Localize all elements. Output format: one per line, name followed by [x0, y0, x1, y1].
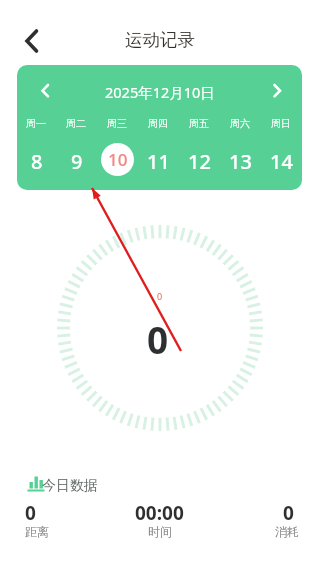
staticText: 12 [188, 148, 211, 175]
staticText: 周四 [148, 117, 168, 130]
staticText: 今日数据 [42, 477, 98, 495]
staticText: 0 [25, 500, 36, 526]
staticText: 14 [270, 148, 293, 175]
staticText: 运动记录 [125, 29, 195, 51]
staticText: 0 [157, 290, 163, 302]
staticText: 周六 [230, 117, 250, 130]
staticText: 周日 [271, 117, 291, 130]
staticText: 8 [31, 148, 43, 175]
staticText: 消耗 [275, 524, 299, 539]
staticText: 0 [147, 314, 169, 364]
staticText: 周三 [107, 117, 127, 130]
staticText: 2025年12月10日 [105, 82, 215, 102]
staticText: 9 [71, 148, 83, 175]
staticText: 0 [283, 500, 294, 526]
staticText: 13 [229, 148, 252, 175]
staticText: 距离 [25, 524, 49, 539]
staticText: 11 [147, 148, 170, 175]
staticText: 00:00 [135, 500, 184, 526]
staticText: 周二 [66, 117, 86, 130]
staticText: 时间 [148, 524, 172, 539]
staticText: 周一 [26, 117, 46, 130]
staticText: 10 [108, 148, 128, 171]
staticText: 周五 [189, 117, 209, 130]
